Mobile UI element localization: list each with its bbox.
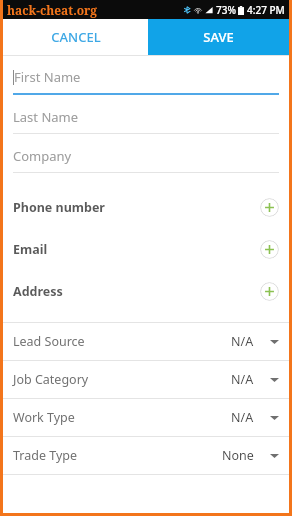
button[interactable]: Work Type (3, 399, 289, 437)
button[interactable]: Phone number (13, 186, 279, 228)
staticText: Work Type (13, 409, 75, 426)
staticText: CANCEL (51, 28, 101, 46)
button[interactable]: Last Name (3, 100, 289, 139)
button[interactable]: Job Category (3, 361, 289, 399)
staticText: N/A (231, 333, 254, 350)
button[interactable]: CANCEL (3, 19, 148, 55)
staticText: Trade Type (13, 447, 78, 464)
staticText: Last Name (13, 108, 79, 126)
staticText: Phone number (13, 199, 105, 216)
button[interactable]: Add Email (260, 240, 279, 259)
staticText: 4:27 PM (247, 3, 285, 17)
staticText: Job Category (13, 371, 89, 388)
button[interactable]: Company (3, 139, 289, 178)
button[interactable]: Add Phone number (260, 198, 279, 217)
staticText: N/A (231, 371, 254, 388)
staticText: hack-cheat.org (7, 2, 98, 18)
staticText: Company (13, 147, 72, 165)
staticText: 73% (216, 3, 236, 17)
button[interactable]: SAVE (148, 19, 289, 55)
staticText: First Name (14, 68, 81, 86)
staticText: None (222, 447, 254, 464)
staticText: N/A (231, 409, 254, 426)
button[interactable]: Add Address (260, 282, 279, 301)
staticText: Lead Source (13, 333, 85, 350)
button[interactable]: Address (13, 270, 279, 312)
button[interactable]: First Name (3, 60, 289, 100)
staticText: SAVE (203, 28, 234, 46)
button[interactable]: Trade Type (3, 437, 289, 475)
staticText: Address (13, 283, 63, 300)
button[interactable]: Lead Source (3, 323, 289, 361)
staticText: Email (13, 241, 48, 258)
button[interactable]: Email (13, 228, 279, 270)
